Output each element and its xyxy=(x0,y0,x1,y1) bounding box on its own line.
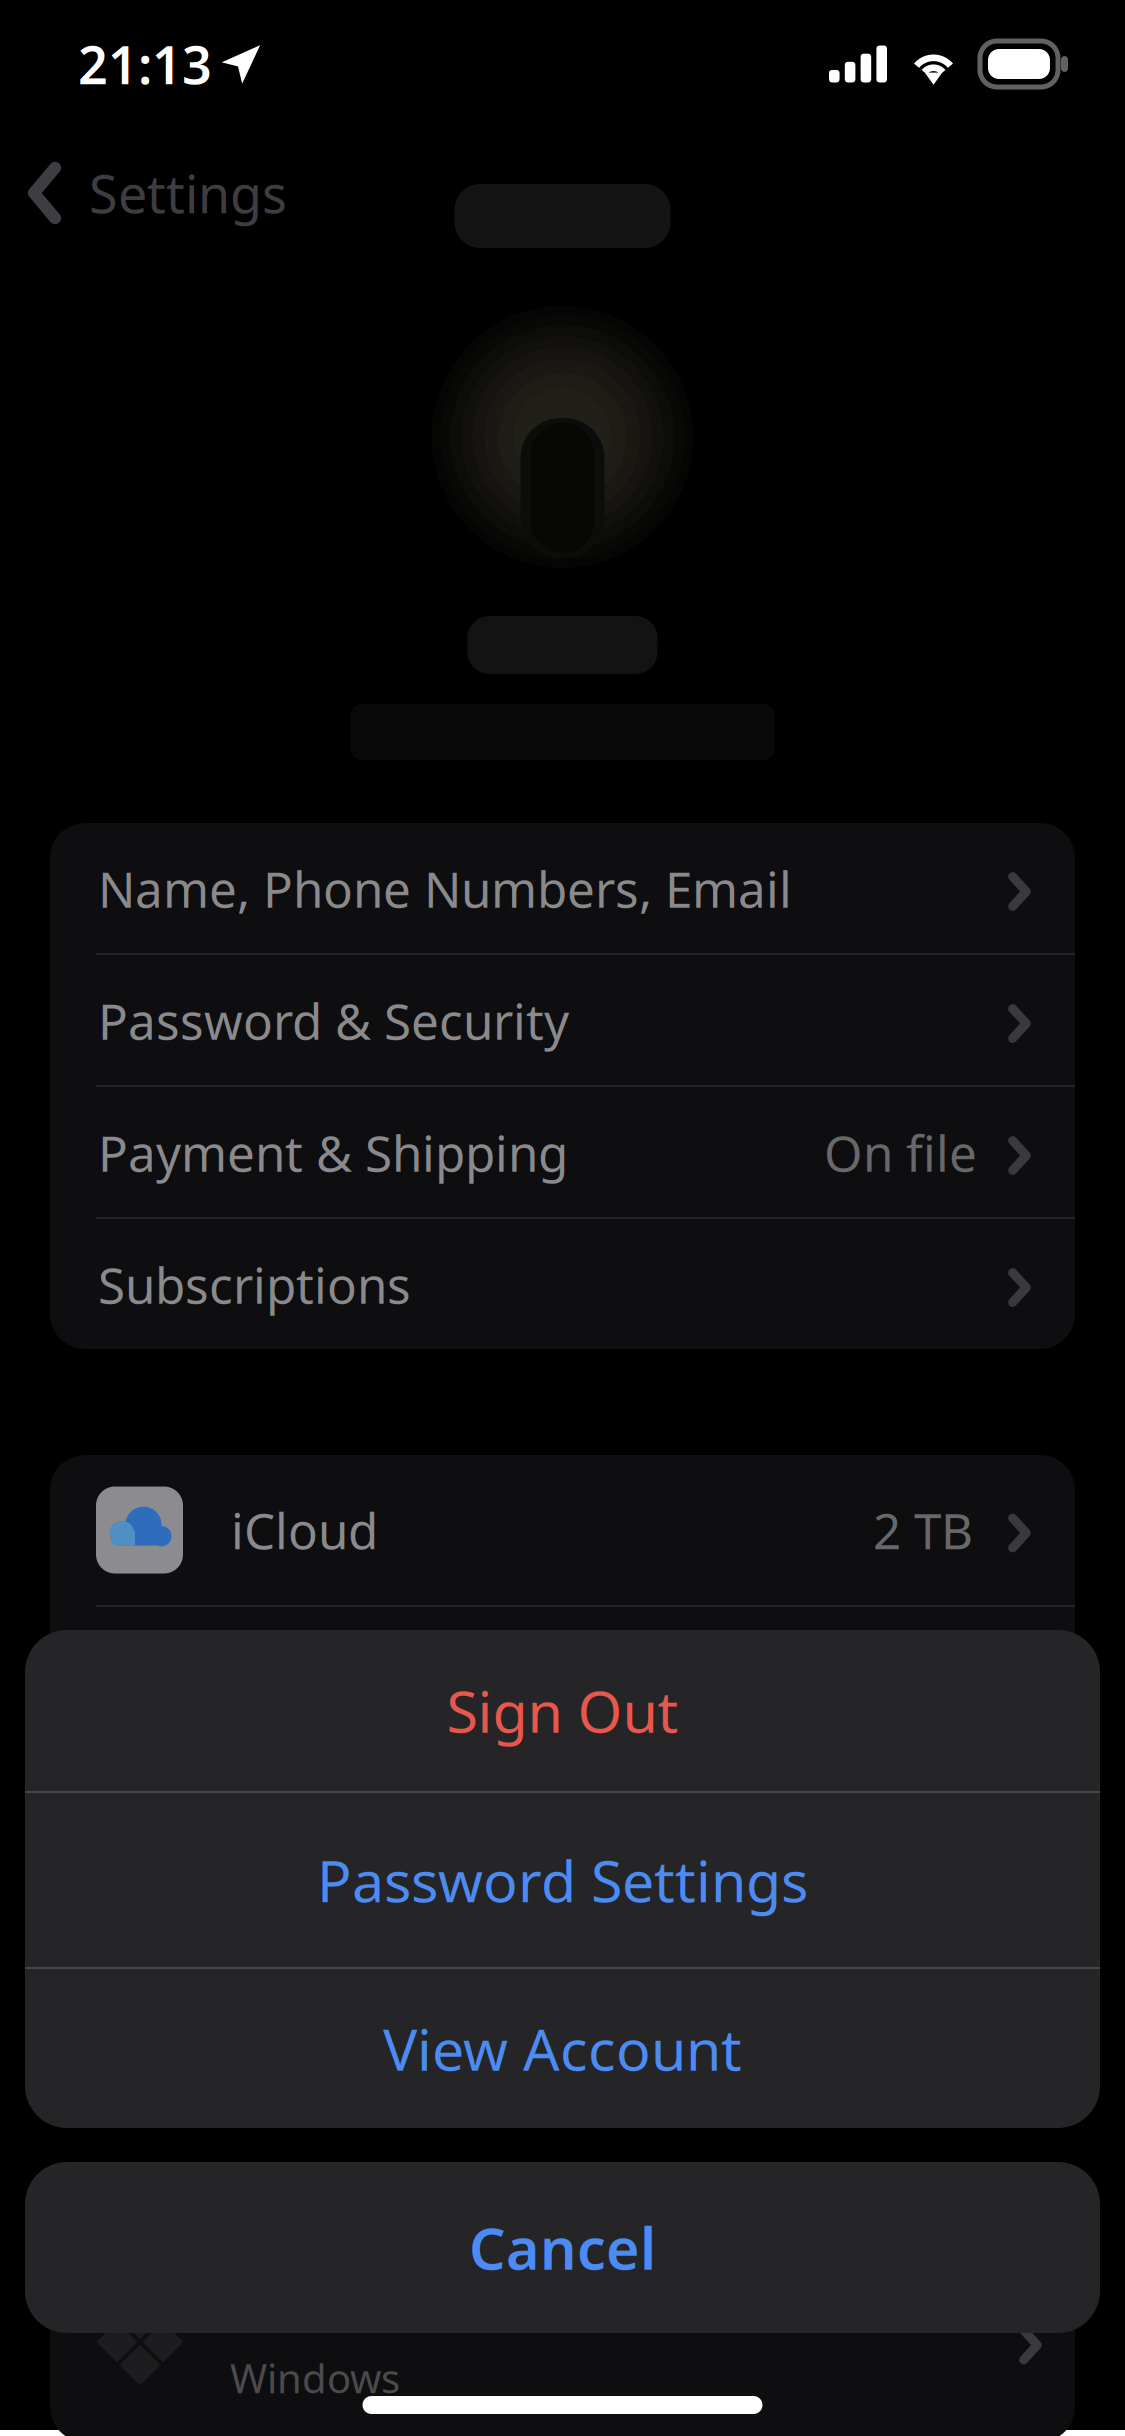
staticText: View Account xyxy=(383,2010,742,2086)
staticText: 21:13 xyxy=(78,29,212,99)
staticText: Windows xyxy=(230,2351,400,2404)
button[interactable]: View Account xyxy=(25,1969,1100,2128)
button[interactable]: Sign Out xyxy=(25,1630,1100,1791)
staticText: iCloud xyxy=(231,1497,378,1563)
staticText: Password & Security xyxy=(98,988,569,1053)
button[interactable]: Payment & Shipping xyxy=(50,1087,1075,1217)
staticText: 2 TB xyxy=(873,1497,973,1563)
staticText: Sign Out xyxy=(446,1672,678,1748)
button[interactable]: Settings xyxy=(0,136,287,250)
staticText: Password Settings xyxy=(317,1842,808,1918)
staticText: Payment & Shipping xyxy=(98,1120,568,1185)
staticText: DESKTOP-4G-4860 xyxy=(230,2280,654,2345)
button[interactable]: Name, Phone Numbers, Email xyxy=(50,823,1075,953)
button[interactable]: iCloud xyxy=(50,1455,1075,1605)
button[interactable]: DESKTOP-4G-4860 xyxy=(50,2242,1075,2436)
staticText: On file xyxy=(824,1120,977,1185)
button[interactable]: Subscriptions xyxy=(50,1219,1075,1349)
staticText: Cancel xyxy=(469,2209,656,2285)
staticText: Subscriptions xyxy=(98,1252,411,1317)
button[interactable]: Password & Security xyxy=(50,955,1075,1085)
staticText: Settings xyxy=(89,158,287,228)
button[interactable]: Cancel xyxy=(25,2162,1100,2333)
staticText: Name, Phone Numbers, Email xyxy=(98,856,792,921)
button[interactable]: Password Settings xyxy=(25,1793,1100,1967)
